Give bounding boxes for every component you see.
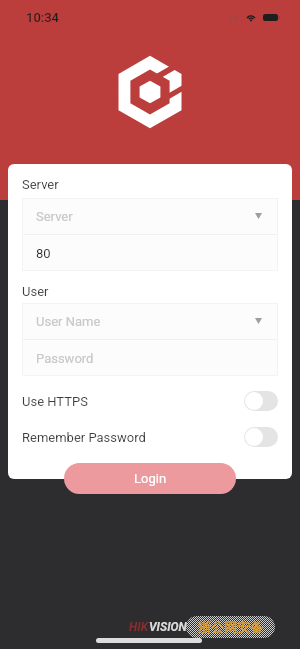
staticText: 80 xyxy=(36,246,51,261)
staticText: Login xyxy=(134,471,167,486)
button[interactable]: 80 xyxy=(22,235,278,271)
staticText: 浙公网安备 xyxy=(198,619,263,635)
staticText: Use HTTPS xyxy=(22,394,88,409)
staticText: User xyxy=(22,284,49,299)
button[interactable]: Login xyxy=(64,463,236,494)
button[interactable]: Remember Password xyxy=(22,419,278,455)
staticText: Server xyxy=(36,209,73,224)
staticText: Password xyxy=(36,351,94,366)
button[interactable]: Use HTTPS xyxy=(22,383,278,419)
button[interactable]: User Name xyxy=(22,303,278,339)
staticText: User Name xyxy=(36,314,101,329)
staticText: Remember Password xyxy=(22,430,146,445)
staticText: HIK xyxy=(129,620,149,634)
button[interactable]: Password xyxy=(22,340,278,376)
button[interactable]: Server xyxy=(22,198,278,234)
staticText: 10:34 xyxy=(26,10,59,25)
staticText: Server xyxy=(22,177,59,192)
staticText: VISION xyxy=(149,620,187,634)
